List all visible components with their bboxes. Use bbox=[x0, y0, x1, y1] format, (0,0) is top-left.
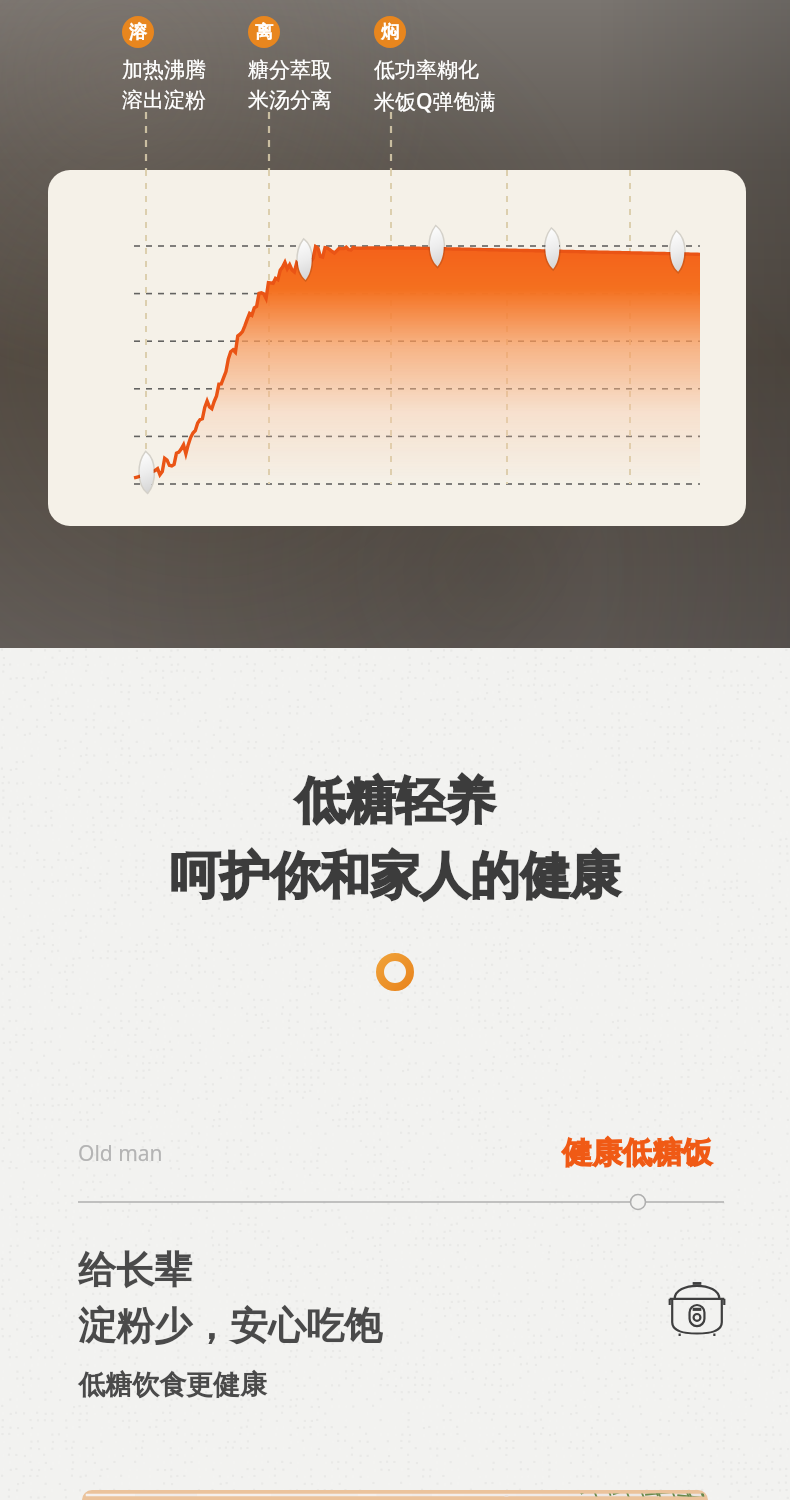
button[interactable]: Rice cooker bbox=[666, 1274, 728, 1336]
staticText: 给长辈 bbox=[78, 1246, 192, 1294]
staticText: 溶 bbox=[129, 21, 147, 44]
staticText: 低功率糊化 bbox=[374, 57, 479, 83]
button[interactable] bbox=[48, 170, 746, 526]
staticText: 焖 bbox=[381, 21, 399, 44]
staticText: 米饭Q弹饱满 bbox=[374, 87, 496, 116]
staticText: 加热沸腾 bbox=[122, 57, 206, 83]
staticText: 离 bbox=[255, 21, 273, 44]
staticText: 淀粉少，安心吃饱 bbox=[78, 1302, 382, 1350]
button[interactable]: 离 bbox=[248, 16, 332, 113]
staticText: 米汤分离 bbox=[248, 87, 332, 113]
staticText: 呵护你和家人的健康 bbox=[170, 845, 620, 908]
staticText: Old man bbox=[78, 1139, 163, 1168]
staticText: 低糖饮食更健康 bbox=[78, 1368, 267, 1402]
button[interactable]: 焖 bbox=[374, 16, 496, 116]
staticText: 溶出淀粉 bbox=[122, 87, 206, 113]
staticText: 糖分萃取 bbox=[248, 57, 332, 83]
staticText: 低糖轻养 bbox=[295, 770, 495, 833]
button[interactable] bbox=[82, 1490, 708, 1500]
button[interactable]: 溶 bbox=[122, 16, 206, 113]
staticText: 健康低糖饭 bbox=[562, 1134, 712, 1172]
